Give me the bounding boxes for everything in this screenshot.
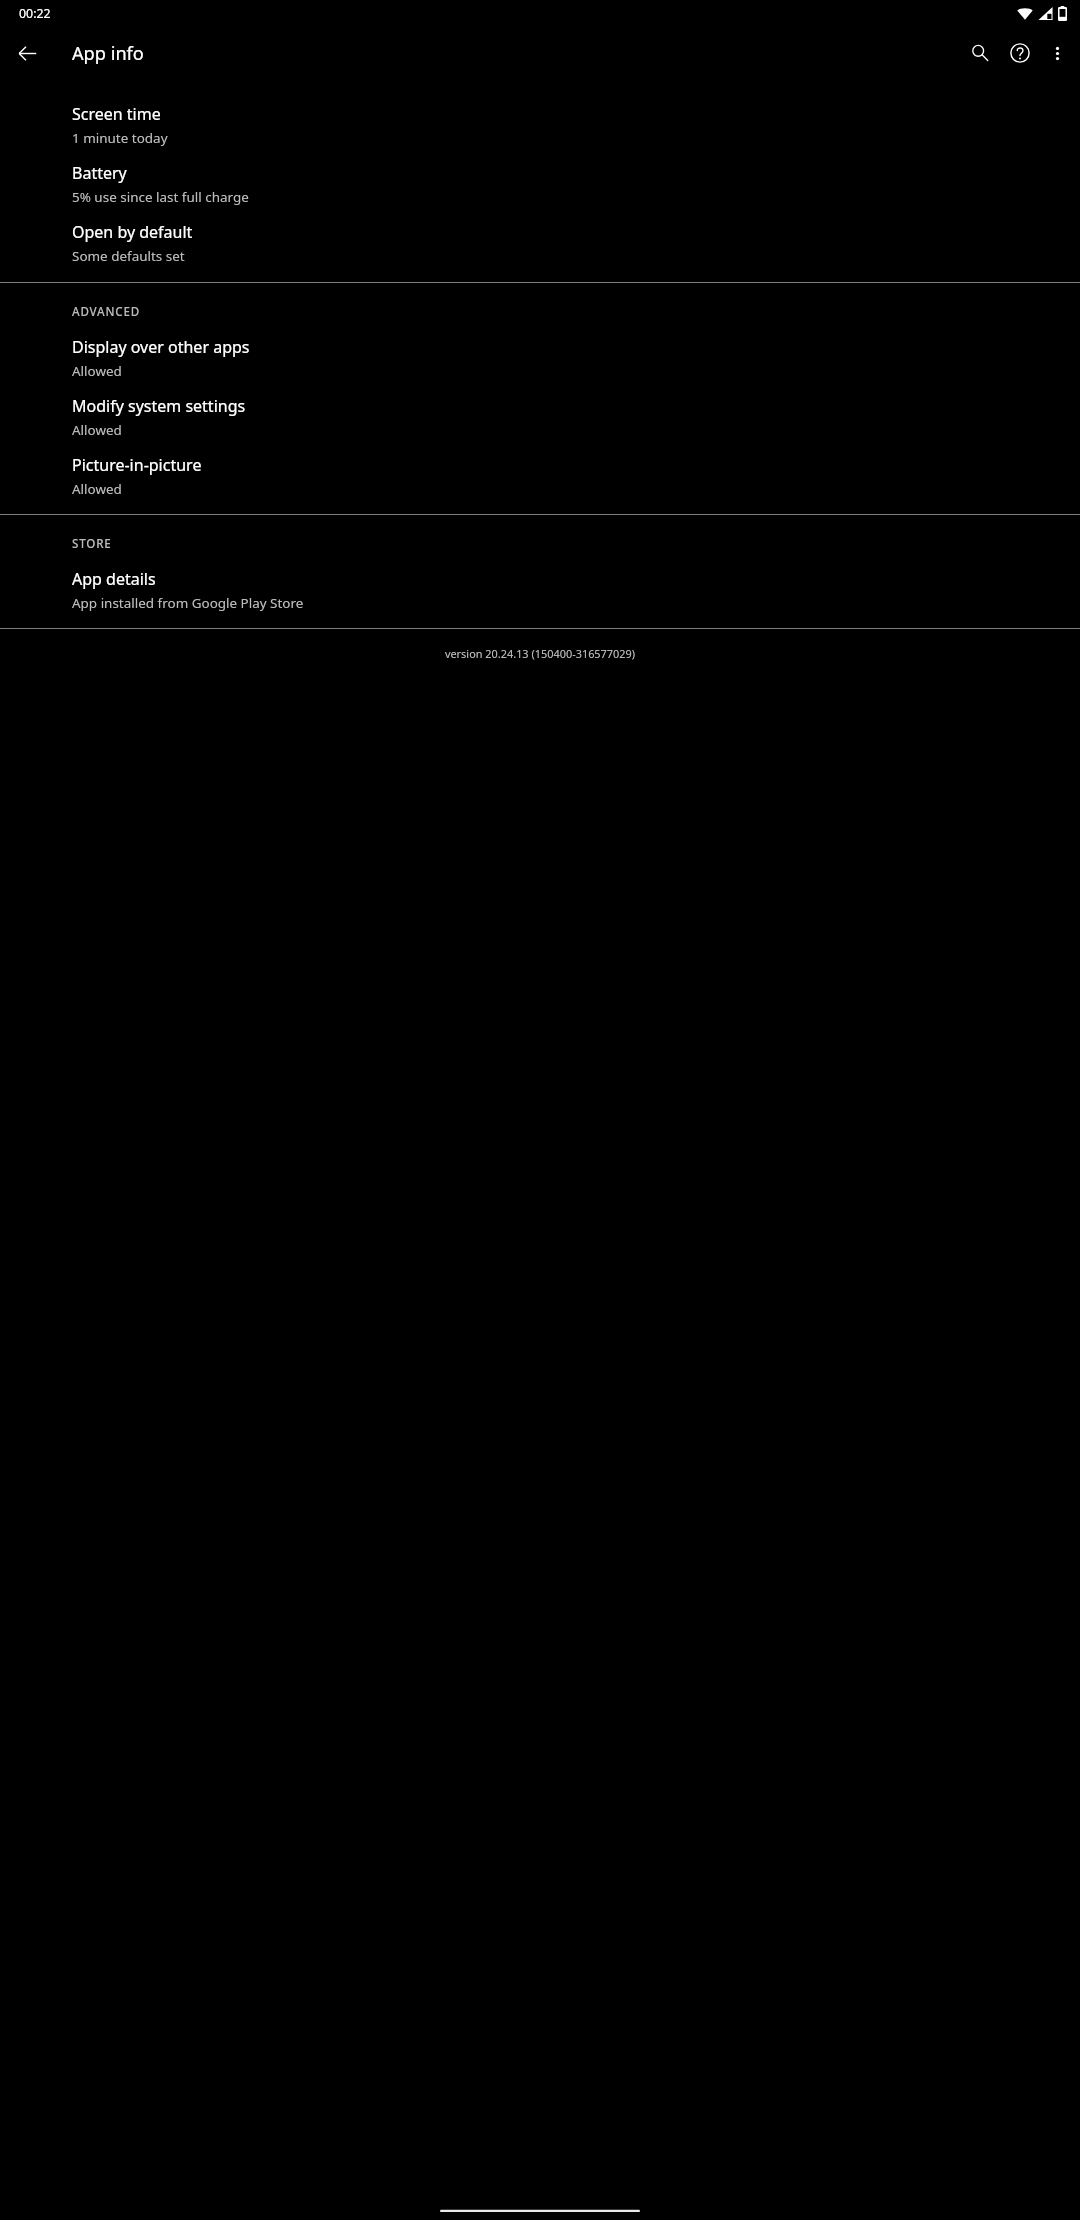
staticText: 1 minute today bbox=[72, 129, 168, 147]
staticText: Allowed bbox=[72, 362, 122, 380]
button[interactable]: Battery bbox=[0, 155, 1080, 214]
button[interactable]: Open by default bbox=[0, 214, 1080, 273]
button[interactable]: Screen time bbox=[0, 96, 1080, 155]
staticText: ADVANCED bbox=[72, 304, 141, 320]
staticText: App info bbox=[72, 41, 144, 66]
staticText: Open by default bbox=[72, 221, 193, 243]
staticText: Modify system settings bbox=[72, 395, 246, 417]
staticText: STORE bbox=[72, 536, 112, 552]
staticText: App installed from Google Play Store bbox=[72, 594, 304, 612]
staticText: version 20.24.13 (150400-316577029) bbox=[0, 646, 1080, 661]
button[interactable]: Modify system settings bbox=[0, 388, 1080, 447]
staticText: 5% use since last full charge bbox=[72, 188, 249, 206]
staticText: Some defaults set bbox=[72, 247, 185, 265]
staticText: 00:22 bbox=[19, 5, 51, 22]
button[interactable]: App details bbox=[0, 561, 1080, 620]
button[interactable]: More options bbox=[1040, 33, 1074, 73]
staticText: Allowed bbox=[72, 480, 122, 498]
staticText: Picture-in-picture bbox=[72, 454, 202, 476]
staticText: Allowed bbox=[72, 421, 122, 439]
button[interactable]: Help bbox=[1000, 33, 1040, 73]
button[interactable]: Search bbox=[960, 33, 1000, 73]
staticText: Screen time bbox=[72, 103, 161, 125]
button[interactable]: Display over other apps bbox=[0, 329, 1080, 388]
staticText: Battery bbox=[72, 162, 127, 184]
staticText: App details bbox=[72, 568, 156, 590]
button[interactable]: Picture-in-picture bbox=[0, 447, 1080, 506]
staticText: Display over other apps bbox=[72, 336, 250, 358]
button[interactable]: Back bbox=[7, 33, 47, 73]
